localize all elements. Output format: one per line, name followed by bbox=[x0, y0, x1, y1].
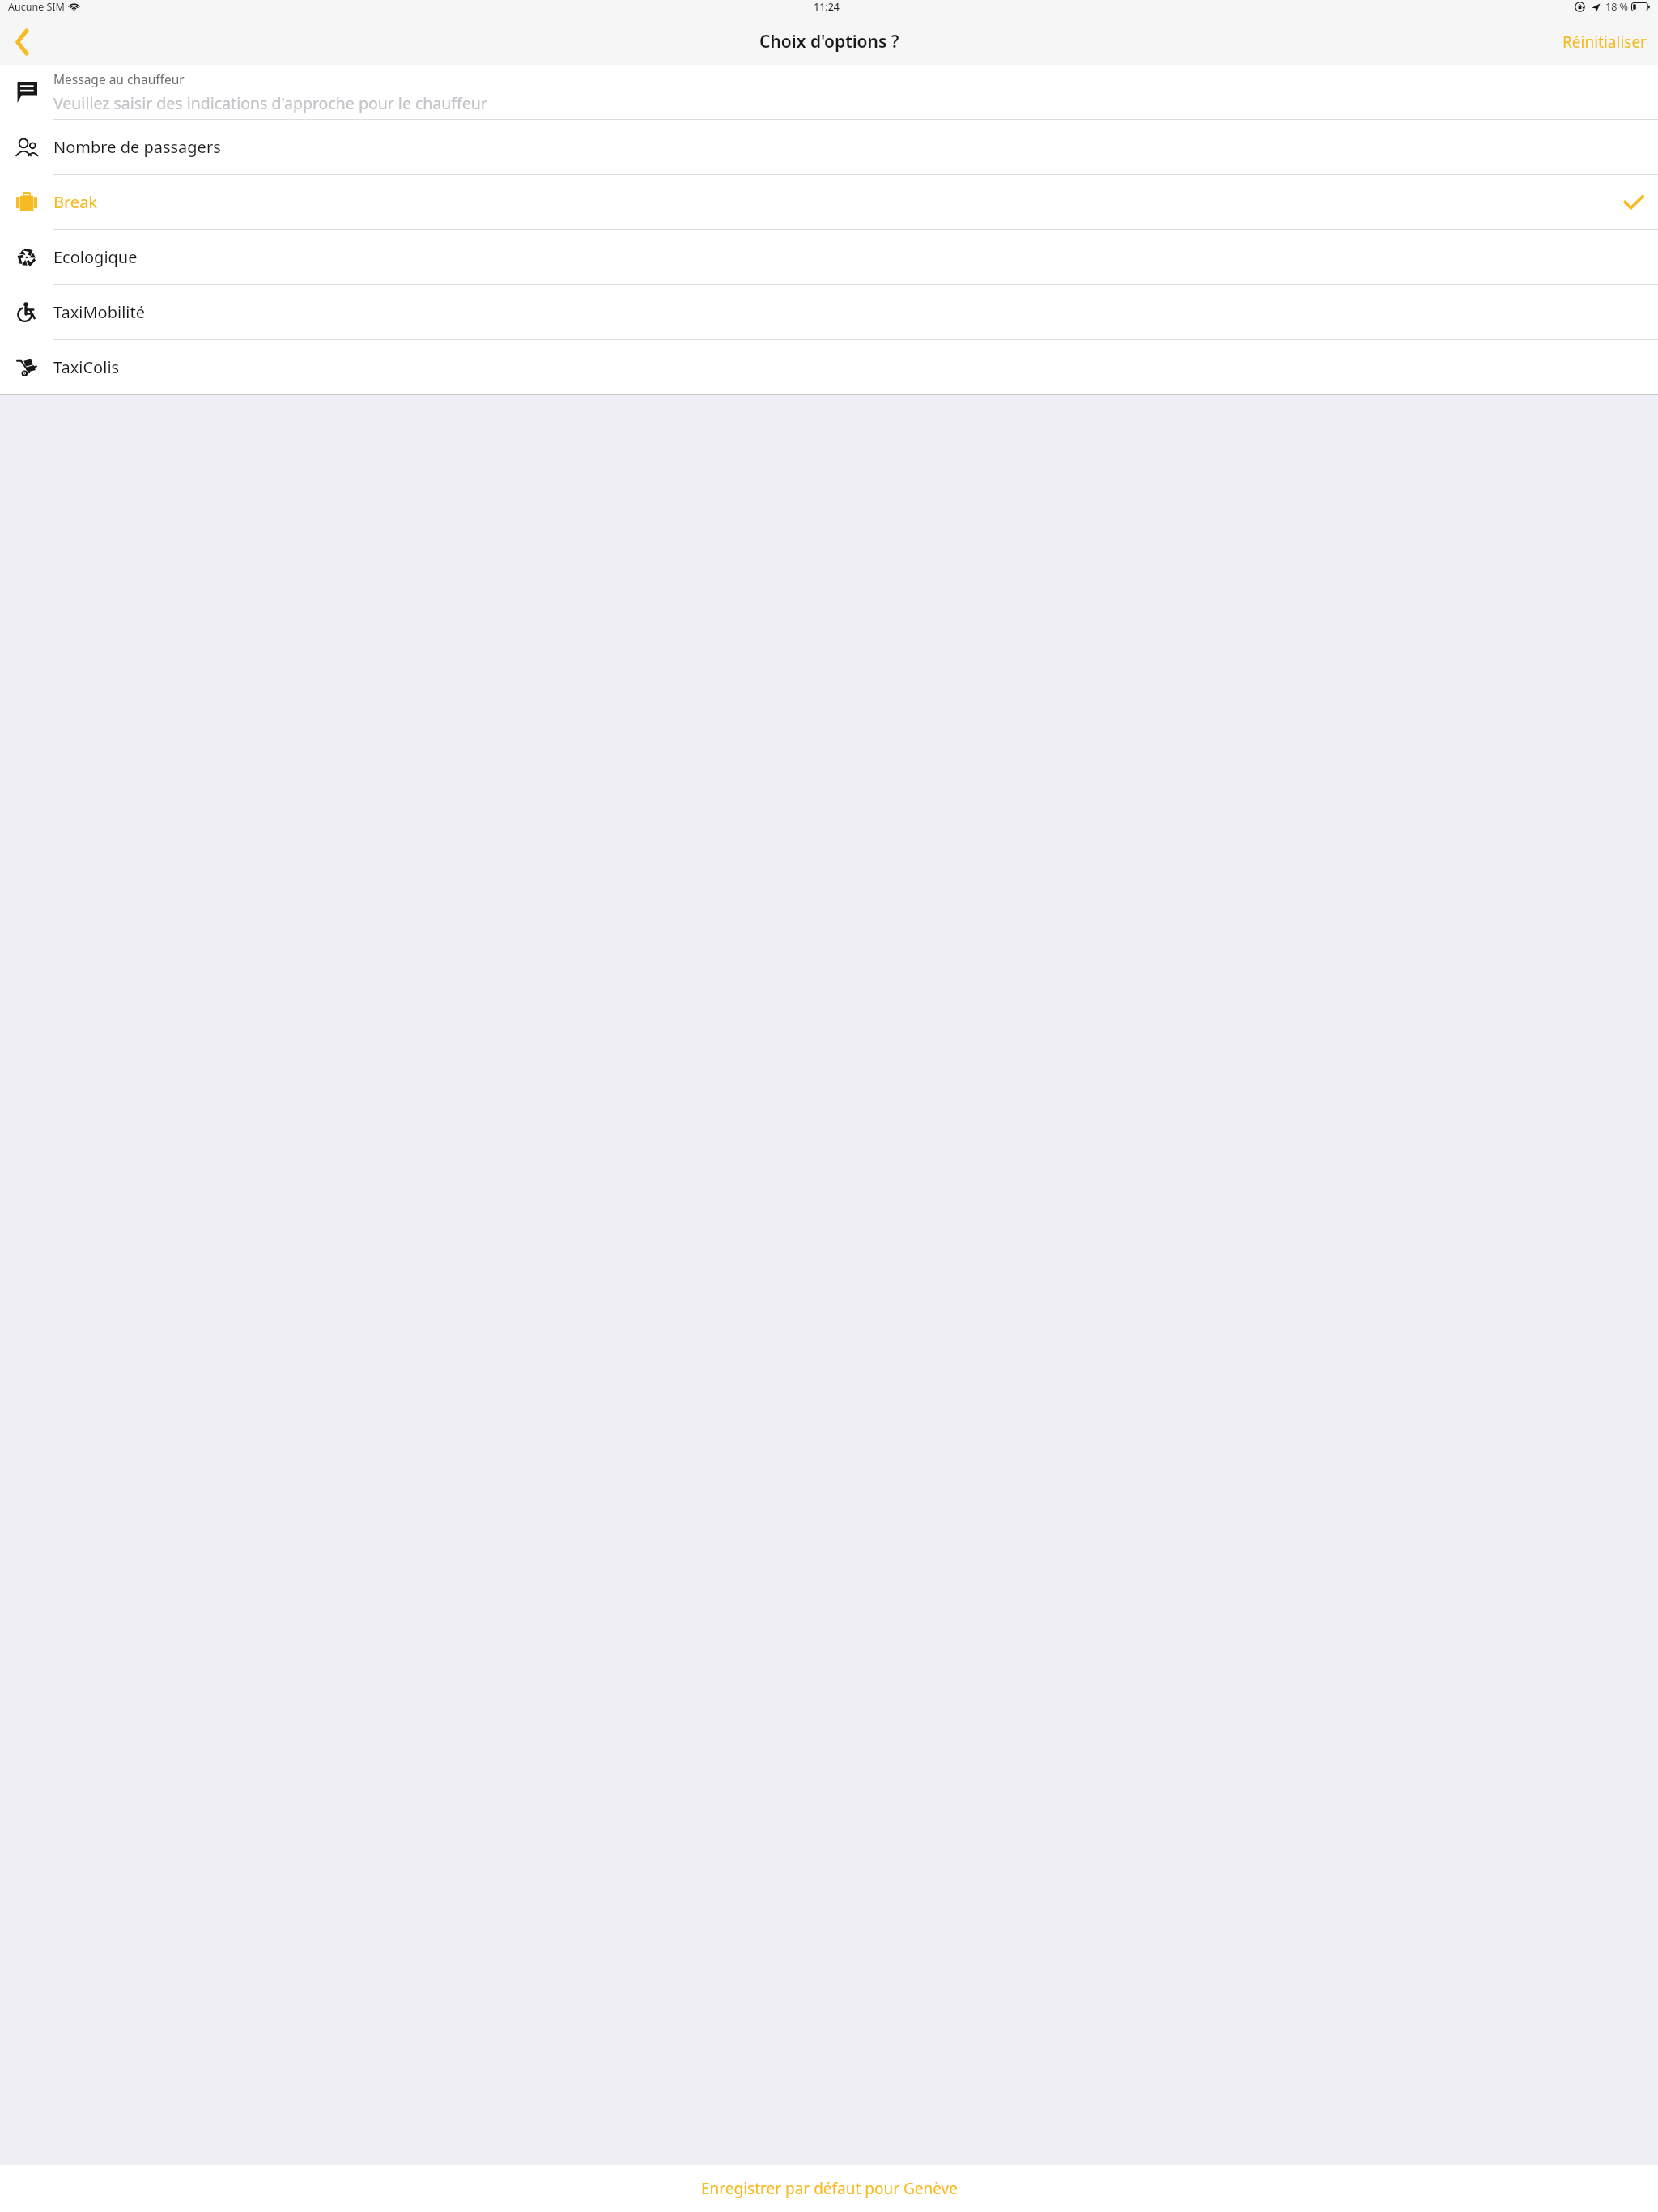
staticText: TaxiMobilité bbox=[53, 301, 1658, 323]
staticText: Break bbox=[53, 191, 1624, 213]
button[interactable]: TaxiColis bbox=[0, 340, 1658, 394]
button[interactable]: TaxiMobilité bbox=[0, 285, 1658, 339]
staticText: 11:24 bbox=[814, 0, 840, 14]
button[interactable]: Réinitialiser bbox=[1562, 32, 1647, 53]
button[interactable]: Back bbox=[0, 20, 44, 64]
staticText: Choix d'options ? bbox=[759, 30, 899, 53]
button[interactable]: Break bbox=[0, 175, 1658, 229]
button[interactable]: Message au chauffeur bbox=[0, 65, 1658, 119]
staticText: Nombre de passagers bbox=[53, 136, 1658, 158]
staticText: Ecologique bbox=[53, 246, 1658, 268]
staticText: Veuillez saisir des indications d'approc… bbox=[53, 92, 487, 114]
button[interactable]: Enregistrer par défaut pour Genève bbox=[0, 2165, 1658, 2212]
staticText: TaxiColis bbox=[53, 356, 1658, 378]
staticText: 18 % bbox=[1605, 0, 1628, 14]
staticText: Enregistrer par défaut pour Genève bbox=[701, 2178, 958, 2199]
button[interactable]: Nombre de passagers bbox=[0, 120, 1658, 174]
staticText: Réinitialiser bbox=[1562, 32, 1647, 53]
staticText: Aucune SIM bbox=[8, 0, 65, 14]
button[interactable]: Ecologique bbox=[0, 230, 1658, 284]
staticText: Message au chauffeur bbox=[53, 70, 185, 87]
